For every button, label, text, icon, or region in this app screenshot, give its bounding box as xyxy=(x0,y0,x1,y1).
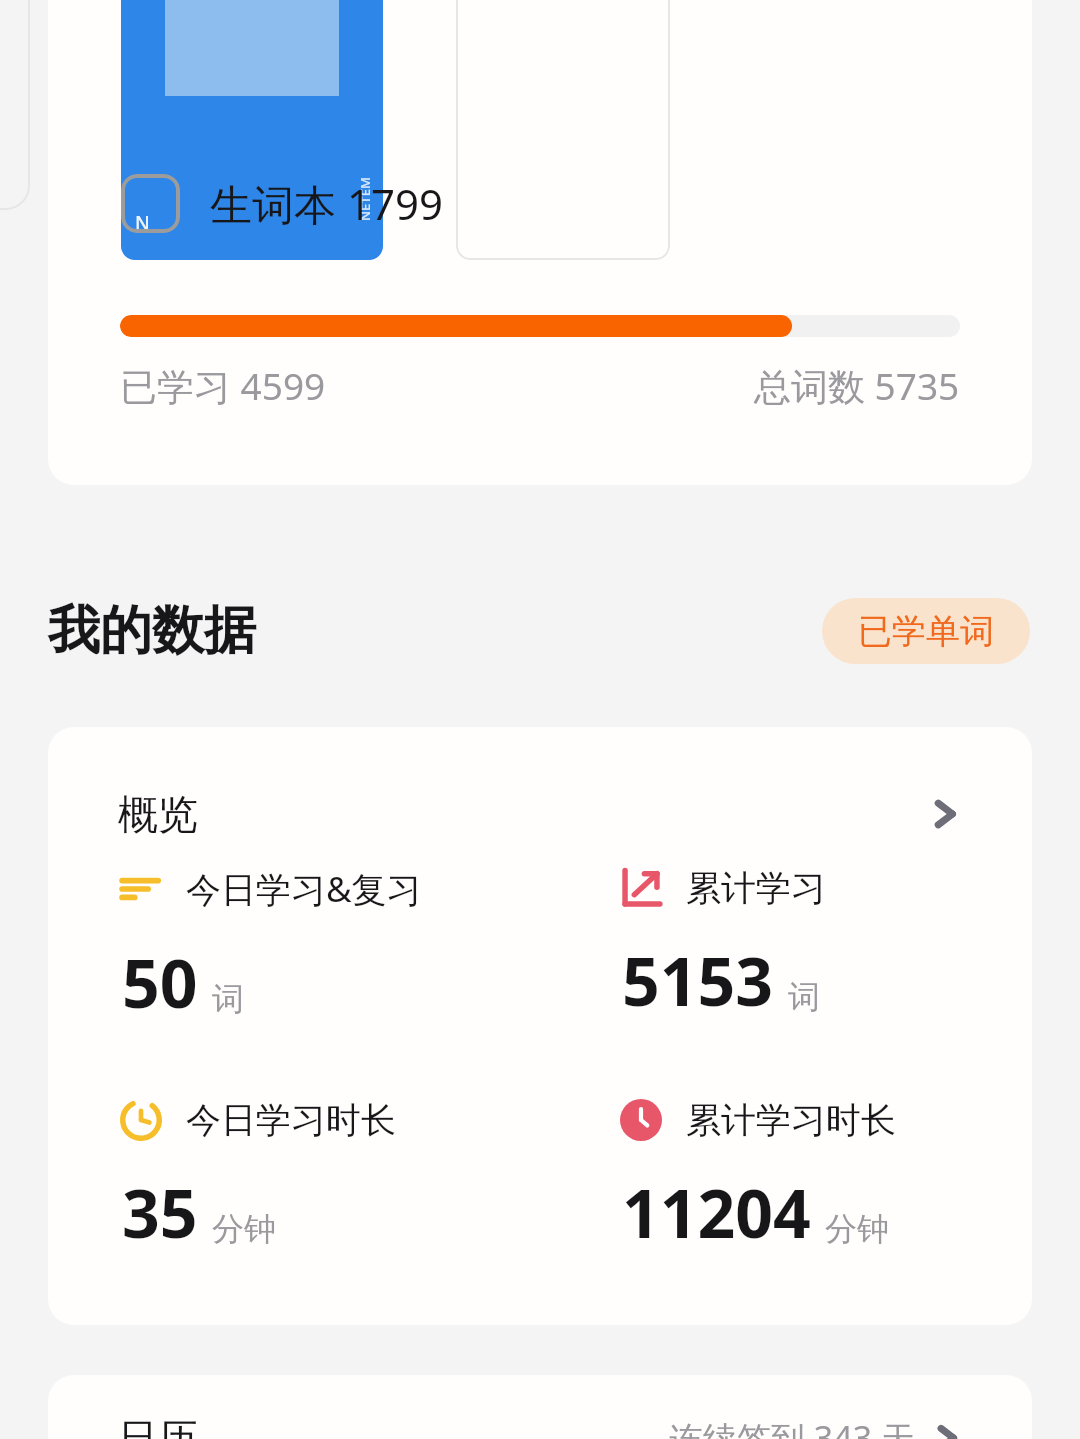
staticText: 已学习 4599 xyxy=(120,360,326,411)
staticText: 5153 xyxy=(622,935,774,1025)
staticText: 35 xyxy=(122,1167,198,1257)
staticText: 词 xyxy=(788,977,820,1017)
staticText: 日历 xyxy=(118,1413,198,1439)
staticText: 分钟 xyxy=(825,1209,889,1249)
button[interactable]: N xyxy=(48,0,1032,485)
staticText: 累计学习 xyxy=(686,866,826,910)
staticText: 分钟 xyxy=(212,1209,276,1249)
staticText: NETEM xyxy=(356,177,374,221)
button[interactable]: 已学单词 xyxy=(822,598,1030,664)
staticText: 词 xyxy=(212,979,244,1019)
button[interactable]: 概览 xyxy=(48,769,1032,859)
staticText: 我的数据 xyxy=(48,598,256,664)
other: Cumulative study duration xyxy=(620,1099,662,1141)
staticText: N xyxy=(135,210,150,236)
staticText: 今日学习时长 xyxy=(186,1098,396,1142)
button[interactable]: Today study and review xyxy=(118,865,618,1027)
staticText: 今日学习&复习 xyxy=(186,865,422,913)
button[interactable]: Today study duration xyxy=(118,1097,618,1257)
staticText: 累计学习时长 xyxy=(686,1098,896,1142)
staticText: 已学单词 xyxy=(858,610,994,653)
staticText: 连续签到 343 天 xyxy=(669,1415,916,1439)
button[interactable]: Cumulative study duration xyxy=(618,1097,998,1257)
staticText: 生词本 1799 xyxy=(210,175,444,232)
button[interactable]: 生词本 1799 xyxy=(121,172,444,234)
button[interactable]: Cumulative study xyxy=(618,865,998,1025)
staticText: 概览 xyxy=(118,789,198,839)
other: Cumulative study xyxy=(620,867,662,909)
other: Today study and review xyxy=(120,868,162,910)
staticText: 11204 xyxy=(622,1167,811,1257)
staticText: 50 xyxy=(122,937,198,1027)
other: Today study duration xyxy=(120,1099,162,1141)
button[interactable]: 日历 xyxy=(48,1375,1032,1439)
staticText: 总词数 5735 xyxy=(754,360,960,411)
